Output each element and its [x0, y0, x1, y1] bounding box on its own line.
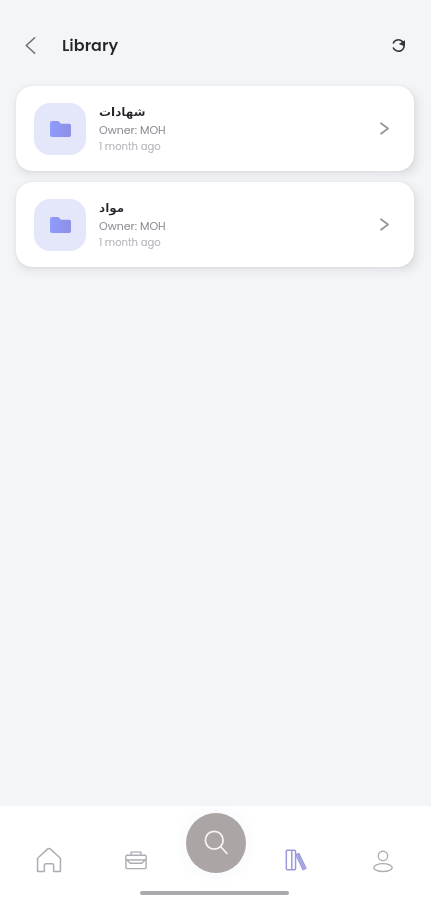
- staticText: 1 month ago: [99, 235, 161, 249]
- button[interactable]: Profile: [356, 834, 410, 888]
- staticText: Library: [62, 34, 119, 56]
- staticText: 1 month ago: [99, 139, 161, 153]
- button[interactable]: مواد: [16, 182, 414, 267]
- button[interactable]: Cases: [109, 833, 163, 887]
- button[interactable]: Library: [269, 833, 323, 887]
- button[interactable]: Search: [186, 813, 246, 873]
- staticText: Owner: MOH: [99, 122, 166, 137]
- staticText: Owner: MOH: [99, 218, 166, 233]
- button[interactable]: Refresh: [381, 28, 415, 62]
- staticText: مواد: [99, 201, 125, 215]
- button[interactable]: Home: [22, 833, 76, 887]
- button[interactable]: شهادات: [16, 86, 414, 171]
- button[interactable]: Back: [14, 29, 46, 61]
- staticText: شهادات: [99, 105, 146, 119]
